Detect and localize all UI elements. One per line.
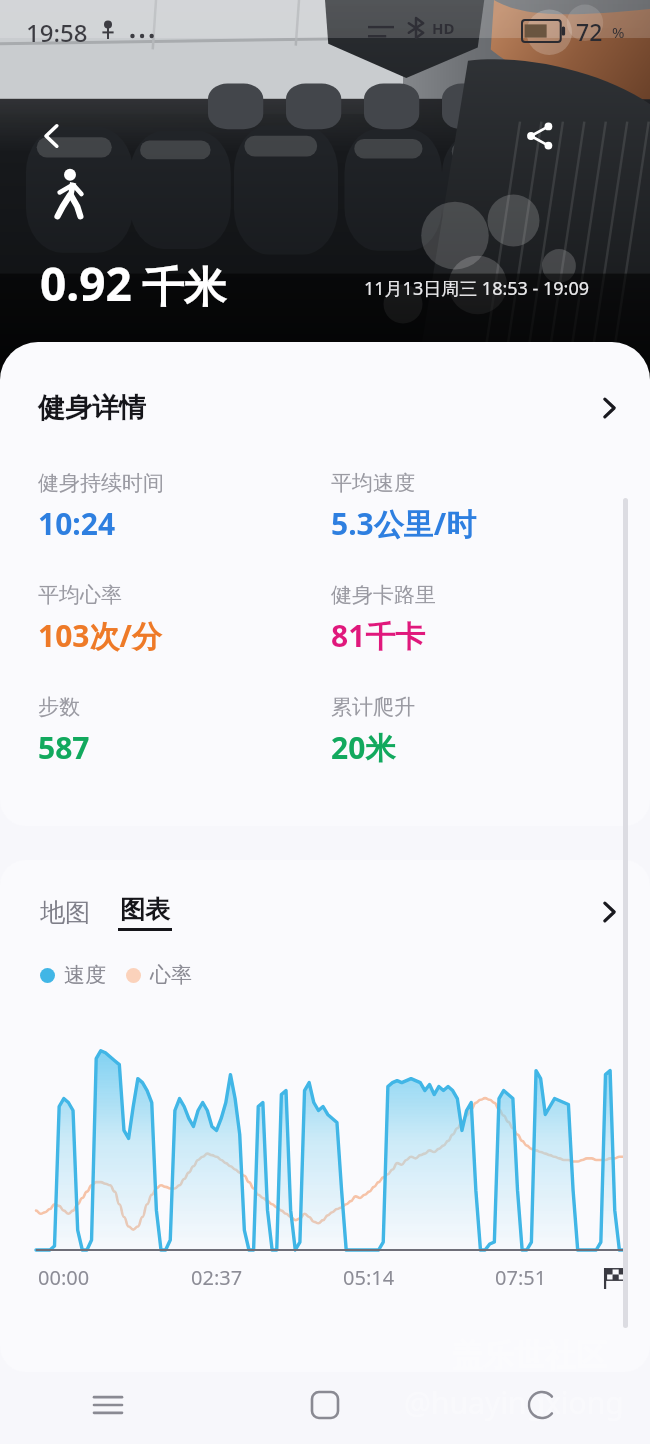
staticText: HD: [432, 18, 455, 38]
staticText: 健身详情: [38, 391, 146, 425]
staticText: 587: [38, 727, 90, 768]
staticText: 07:51: [495, 1264, 547, 1291]
staticText: 72: [576, 16, 603, 47]
button[interactable]: 图表: [118, 894, 172, 931]
staticText: 5.3公里/时: [331, 503, 477, 544]
button[interactable]: 健身详情: [0, 380, 650, 436]
button[interactable]: More: [596, 899, 622, 925]
button[interactable]: Back: [433, 1366, 650, 1444]
staticText: 千米: [142, 262, 226, 315]
staticText: 地图: [40, 897, 90, 928]
staticText: 10:24: [38, 503, 116, 544]
staticText: 02:37: [191, 1264, 243, 1291]
staticText: 健身卡路里: [331, 582, 436, 608]
staticText: 平均心率: [38, 582, 122, 608]
staticText: @huayingxiong: [404, 1382, 624, 1423]
staticText: %: [612, 22, 625, 42]
staticText: 累计爬升: [331, 694, 415, 720]
button[interactable]: Share: [512, 108, 568, 164]
staticText: 103次/分: [38, 615, 162, 656]
staticText: 速度: [64, 962, 106, 988]
staticText: 图表: [120, 894, 170, 925]
staticText: 健身持续时间: [38, 470, 164, 496]
staticText: 05:14: [343, 1264, 395, 1291]
staticText: 心率: [150, 962, 192, 988]
button[interactable]: 地图: [38, 897, 92, 928]
button[interactable]: Home: [216, 1366, 433, 1444]
staticText: 平均速度: [331, 470, 415, 496]
button[interactable]: Recent apps: [0, 1366, 216, 1444]
staticText: 0.92: [40, 252, 132, 315]
staticText: 19:58: [26, 16, 88, 49]
button[interactable]: Back: [24, 108, 80, 164]
staticText: 00:00: [38, 1264, 90, 1291]
staticText: 20米: [331, 727, 396, 768]
staticText: 81千卡: [331, 615, 426, 656]
staticText: 11月13日周三 18:53 - 19:09: [364, 276, 590, 301]
staticText: 步数: [38, 694, 80, 720]
